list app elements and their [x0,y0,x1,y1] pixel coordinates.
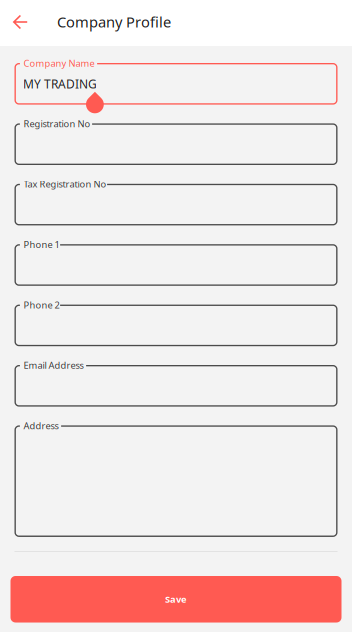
button[interactable]: Address [14,425,337,537]
staticText: MY TRADING [23,76,97,92]
button[interactable]: Phone 1 [14,244,337,286]
button[interactable]: Email Address [14,365,337,407]
staticText: Save [165,593,187,605]
button[interactable]: Tax Registration No [14,184,337,225]
staticText: Company Profile [57,12,171,31]
staticText: Phone 2 [23,299,59,311]
staticText: Address [23,419,58,432]
staticText: Email Address [23,359,83,371]
button[interactable]: Save [10,576,341,622]
button[interactable]: Back [0,0,41,44]
button[interactable]: Registration No [14,123,337,165]
staticText: Phone 1 [23,238,59,251]
staticText: Company Name [23,57,94,69]
staticText: Registration No [23,117,90,130]
button[interactable]: Phone 2 [14,305,337,346]
staticText: Tax Registration No [23,178,106,190]
button[interactable]: Company Name [14,63,337,105]
